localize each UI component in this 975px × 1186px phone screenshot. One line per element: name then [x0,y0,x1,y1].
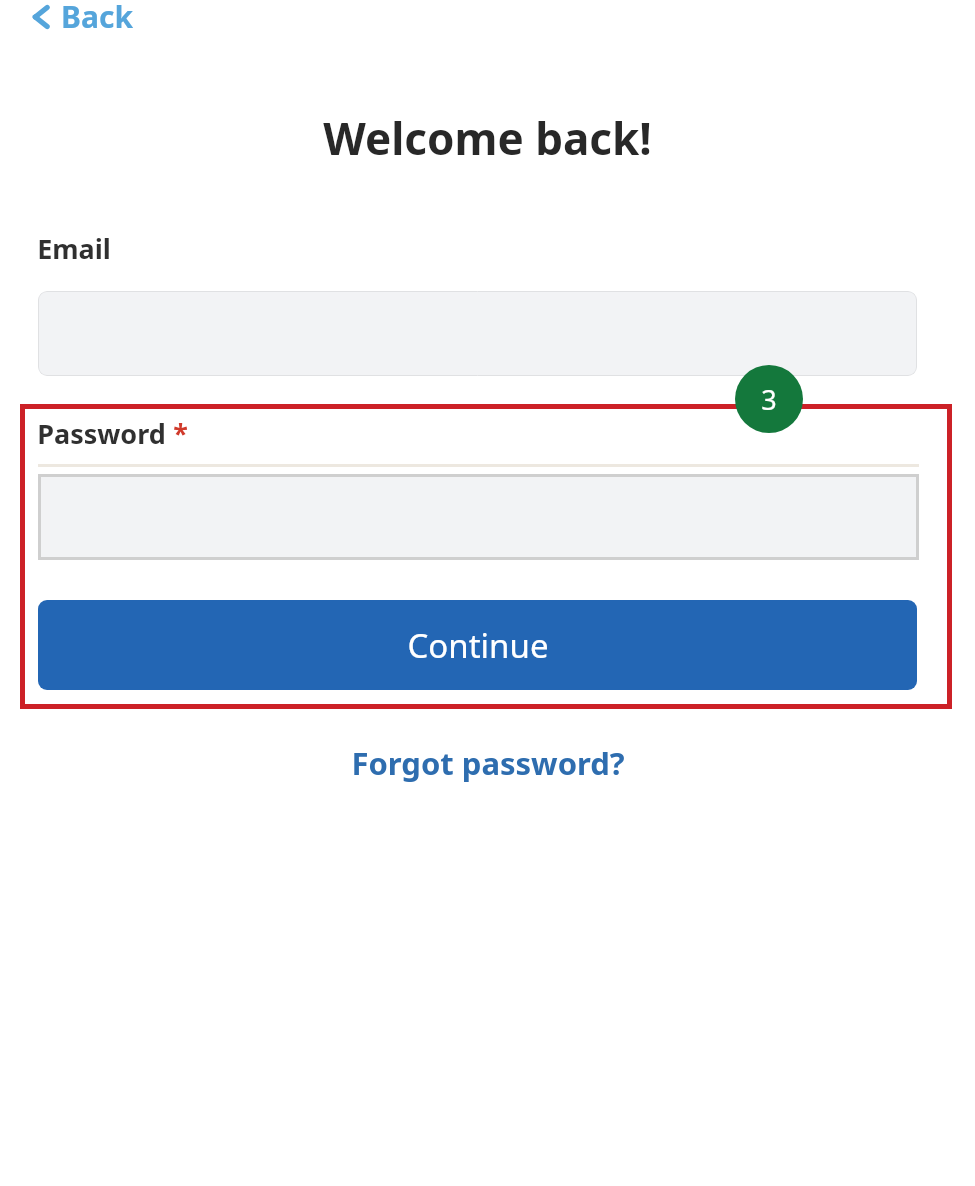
staticText: Email [37,230,111,267]
button[interactable]: Back [22,0,141,43]
button[interactable]: Password input field [38,474,919,560]
button[interactable]: Continue [38,600,917,690]
button[interactable]: Email input field [38,291,917,376]
staticText: 3 [761,381,777,418]
button[interactable]: Forgot password? [341,736,635,790]
staticText: Forgot password? [351,742,625,784]
staticText: Continue [407,623,549,668]
staticText: Back [61,0,133,37]
staticText: * [173,415,188,452]
staticText: Welcome back! [323,108,652,168]
staticText: Password [37,415,166,452]
